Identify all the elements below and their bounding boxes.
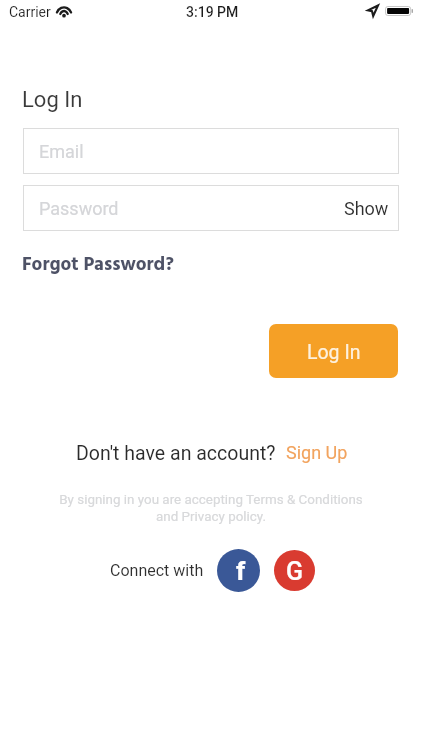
button[interactable]: Sign Up xyxy=(286,442,348,463)
staticText: Don't have an account? xyxy=(76,442,276,465)
staticText: Log In xyxy=(307,341,361,364)
staticText: Log In xyxy=(22,87,83,113)
staticText: Show xyxy=(344,198,389,219)
button[interactable]: Forgot Password? xyxy=(22,250,174,280)
button[interactable]: Email xyxy=(23,128,399,174)
staticText: f xyxy=(236,556,246,586)
staticText: Carrier xyxy=(9,4,51,20)
staticText: 3:19 PM xyxy=(186,4,239,20)
staticText: Forgot Password? xyxy=(22,250,174,280)
staticText: Connect with xyxy=(110,561,204,580)
button[interactable]: Password xyxy=(23,185,399,231)
staticText: Password xyxy=(39,198,119,219)
button[interactable]: Show xyxy=(334,189,399,228)
button[interactable]: Connect with Google xyxy=(274,550,315,591)
staticText: Email xyxy=(39,141,84,162)
staticText: G xyxy=(286,557,304,586)
button[interactable]: Log In xyxy=(269,324,398,378)
staticText: Sign Up xyxy=(286,442,348,463)
staticText: By signing in you are accepting Terms & … xyxy=(0,492,422,525)
button[interactable]: Connect with Facebook xyxy=(217,549,260,592)
